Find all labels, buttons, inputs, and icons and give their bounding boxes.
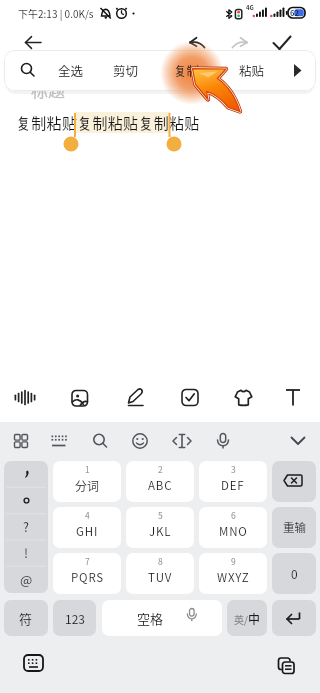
staticText: ! [24, 543, 29, 561]
staticText: 5 [158, 509, 163, 521]
button[interactable]: 剪切 [104, 54, 148, 86]
staticText: 4 [85, 509, 90, 521]
button[interactable] [83, 424, 117, 458]
button[interactable] [268, 31, 296, 55]
staticText: 空格 [137, 609, 164, 628]
button[interactable] [272, 461, 316, 502]
staticText: 62 [290, 7, 299, 18]
staticText: ? [23, 517, 29, 535]
button[interactable] [227, 600, 267, 636]
staticText: 粘贴 [239, 61, 265, 79]
staticText: 6 [231, 509, 236, 521]
button[interactable]: 复制 [165, 54, 209, 86]
button[interactable] [206, 424, 240, 458]
button[interactable] [272, 553, 316, 594]
button[interactable] [16, 648, 50, 678]
button[interactable] [199, 553, 267, 594]
staticText: ABC [148, 477, 173, 494]
button[interactable] [126, 461, 194, 502]
staticText: JKL [149, 523, 172, 540]
staticText: 重输 [283, 519, 306, 536]
button[interactable] [53, 553, 121, 594]
staticText: 复制粘贴复制粘贴复制粘贴 [16, 112, 200, 134]
staticText: @ [20, 570, 33, 589]
button[interactable] [281, 424, 315, 458]
button[interactable] [5, 377, 45, 417]
staticText: 9 [231, 555, 236, 567]
button[interactable] [272, 507, 316, 548]
button[interactable] [53, 507, 121, 548]
staticText: 下午2:13 | 0.0K/s [18, 6, 94, 20]
button[interactable] [272, 600, 316, 636]
button[interactable] [53, 600, 96, 636]
staticText: 复制 [174, 61, 200, 79]
staticText: MNO [219, 523, 248, 540]
staticText: PQRS [71, 569, 104, 586]
staticText: 分词 [75, 477, 100, 494]
staticText: GHI [76, 523, 99, 540]
staticText: 英/中 [234, 610, 260, 627]
staticText: 8 [158, 555, 163, 567]
button[interactable] [41, 424, 75, 458]
button[interactable] [182, 31, 210, 55]
button[interactable] [12, 54, 44, 86]
staticText: 标题 [31, 77, 65, 102]
button[interactable] [102, 600, 222, 636]
button[interactable] [273, 377, 313, 417]
button[interactable] [199, 461, 267, 502]
button[interactable] [4, 461, 48, 593]
button[interactable] [18, 31, 46, 55]
button[interactable]: 粘贴 [230, 54, 274, 86]
button[interactable] [199, 507, 267, 548]
button[interactable] [170, 377, 210, 417]
button[interactable] [269, 650, 303, 680]
button[interactable] [126, 553, 194, 594]
staticText: 3 [231, 463, 236, 475]
button[interactable] [227, 31, 255, 55]
staticText: 7 [85, 555, 90, 567]
staticText: DEF [221, 477, 245, 494]
staticText: 1 [85, 463, 90, 475]
button[interactable] [226, 377, 266, 417]
button[interactable] [53, 461, 121, 502]
button[interactable] [123, 424, 157, 458]
button[interactable] [165, 424, 199, 458]
staticText: 符 [19, 609, 33, 628]
staticText: 4G [246, 3, 254, 12]
staticText: 0 [291, 565, 298, 582]
staticText: WXYZ [217, 569, 250, 586]
button[interactable] [4, 424, 38, 458]
staticText: 全选 [58, 61, 84, 79]
button[interactable]: 全选 [49, 54, 93, 86]
staticText: 123 [65, 610, 85, 627]
staticText: 剪切 [113, 61, 139, 79]
button[interactable] [60, 377, 100, 417]
button[interactable] [115, 377, 155, 417]
staticText: TUV [148, 569, 173, 586]
button[interactable] [4, 600, 48, 636]
button[interactable] [126, 507, 194, 548]
staticText: 2 [158, 463, 163, 475]
